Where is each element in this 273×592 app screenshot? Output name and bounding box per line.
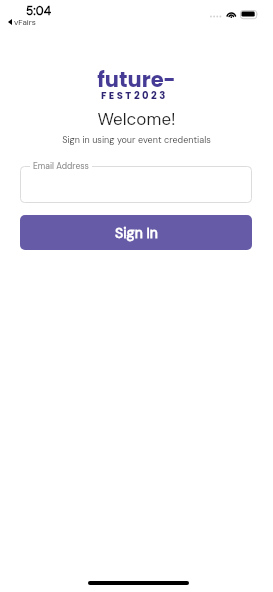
staticText: 5:04 xyxy=(26,3,52,19)
staticText: Sign in using your event credentials xyxy=(0,134,273,146)
staticText: 2023 xyxy=(134,88,168,102)
staticText: Welcome! xyxy=(0,108,273,130)
button[interactable] xyxy=(20,166,252,203)
staticText: FEST xyxy=(101,88,134,102)
staticText: Email Address xyxy=(33,161,89,172)
staticText: vFairs xyxy=(14,17,36,27)
staticText: Sign In xyxy=(115,224,158,242)
button[interactable]: Sign In xyxy=(20,215,252,250)
staticText: future- xyxy=(0,65,273,94)
